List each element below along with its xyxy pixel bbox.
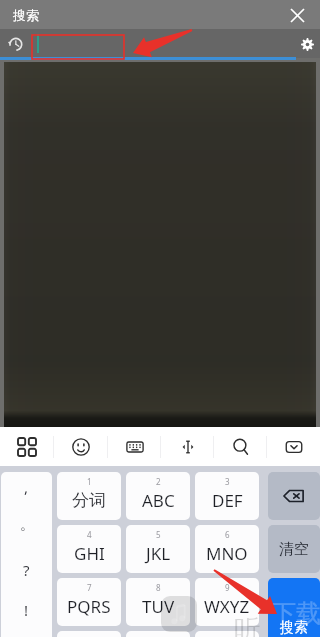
button[interactable]: 1 [57,472,121,520]
button[interactable]: Hide keyboard [267,427,320,466]
staticText: 5 [156,529,161,540]
button[interactable]: 8 [126,578,190,626]
button[interactable]: 2 [126,472,190,520]
button[interactable]: Settings [297,34,317,54]
staticText: 搜索 [13,7,39,23]
button[interactable]: Close [285,3,309,27]
staticText: ? [23,560,30,580]
button[interactable]: Emoji [54,427,108,466]
button[interactable]: Punctuation [1,472,52,637]
staticText: 8 [156,582,161,593]
button[interactable]: Search [214,427,267,466]
staticText: 3 [225,476,230,487]
button[interactable]: 搜索 [268,578,320,637]
button[interactable]: 7 [57,578,121,626]
button[interactable]: 0 [126,631,190,637]
staticText: 6 [225,529,230,540]
button[interactable]: 6 [195,525,259,573]
staticText: 下载 [271,598,320,629]
button[interactable]: 9 [195,578,259,626]
button[interactable]: History [5,34,25,54]
staticText: JKL [146,542,171,565]
staticText: TUV [142,595,175,618]
button[interactable]: Keyboard layout [108,427,161,466]
staticText: 。 [20,516,34,534]
staticText: 9 [225,582,230,593]
button[interactable]: Delete [268,472,320,520]
staticText: 分词 [72,490,106,511]
staticText: WXYZ [204,595,250,618]
staticText: 听 [234,613,261,637]
staticText: 7 [87,582,92,593]
button[interactable]: 3 [195,472,259,520]
button[interactable]: 4 [57,525,121,573]
staticText: 2 [156,476,161,487]
button[interactable]: * [57,631,121,637]
button[interactable]: 5 [126,525,190,573]
staticText: 清空 [279,540,309,559]
button[interactable]: Move cursor [161,427,214,466]
staticText: , [24,477,29,497]
staticText: 搜索 [280,619,308,637]
staticText: DEF [212,489,243,512]
staticText: MNO [206,542,248,565]
button[interactable]: # [195,631,259,637]
staticText: ABC [142,489,175,512]
staticText: GHI [74,542,105,565]
staticText: 4 [87,529,92,540]
staticText: ! [24,600,29,620]
staticText: 1 [87,476,92,487]
button[interactable]: Apps [0,427,54,466]
button[interactable]: 清空 [268,525,320,573]
staticText: PQRS [67,595,111,618]
